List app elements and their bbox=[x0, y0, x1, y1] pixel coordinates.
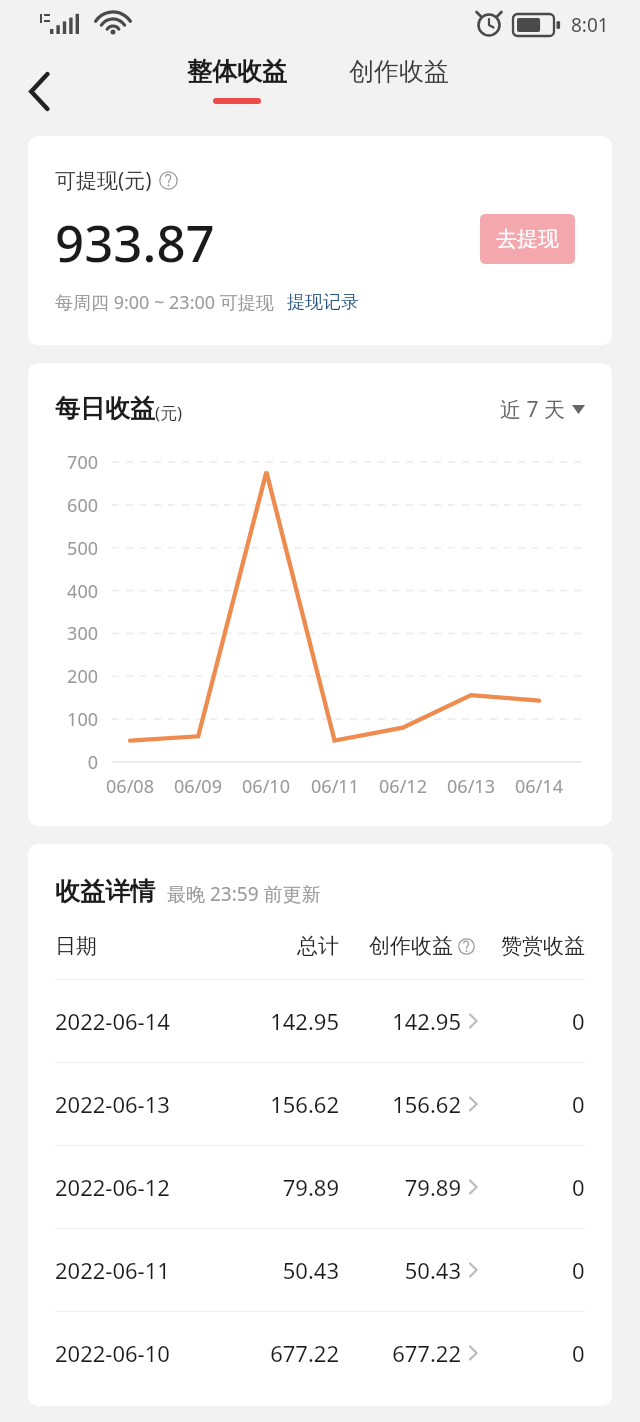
staticText: (元) bbox=[155, 401, 183, 424]
staticText: 2022-06-12 bbox=[55, 1172, 243, 1202]
staticText: 677.22 bbox=[243, 1338, 339, 1368]
staticText: 142.95 bbox=[243, 1006, 339, 1036]
staticText: 去提现 bbox=[496, 226, 559, 252]
staticText: 06/08 bbox=[96, 774, 164, 799]
staticText: 50.43 bbox=[243, 1255, 339, 1285]
staticText: 提现记录 bbox=[287, 291, 359, 314]
button[interactable]: 2022-06-14 bbox=[28, 980, 612, 1062]
staticText: 可提现(元) bbox=[55, 166, 152, 195]
button[interactable]: 2022-06-10 bbox=[28, 1312, 612, 1394]
staticText: 收益详情 bbox=[55, 876, 155, 907]
staticText: 赞赏收益 bbox=[501, 933, 585, 959]
staticText: 300 bbox=[34, 621, 98, 646]
staticText: 200 bbox=[34, 664, 98, 689]
staticText: 0 bbox=[34, 750, 98, 775]
button[interactable]: Back bbox=[13, 64, 67, 118]
staticText: 100 bbox=[34, 707, 98, 732]
staticText: 156.62 bbox=[243, 1089, 339, 1119]
staticText: 600 bbox=[34, 493, 98, 518]
staticText: 8:01 bbox=[571, 12, 609, 38]
staticText: 2022-06-10 bbox=[55, 1338, 243, 1368]
staticText: 0 bbox=[572, 1006, 585, 1036]
staticText: 06/09 bbox=[164, 774, 232, 799]
staticText: 0 bbox=[572, 1338, 585, 1368]
button[interactable]: 2022-06-13 bbox=[28, 1063, 612, 1145]
staticText: 500 bbox=[34, 536, 98, 561]
staticText: 79.89 bbox=[243, 1172, 339, 1202]
staticText: 每日收益 bbox=[55, 393, 155, 424]
staticText: 677.22 bbox=[369, 1338, 461, 1368]
staticText: 日期 bbox=[55, 933, 243, 959]
staticText: 2022-06-14 bbox=[55, 1006, 243, 1036]
button[interactable]: 去提现 bbox=[480, 214, 575, 264]
button[interactable]: 近 7 天 bbox=[500, 395, 585, 424]
staticText: 700 bbox=[34, 450, 98, 475]
staticText: 2022-06-13 bbox=[55, 1089, 243, 1119]
button[interactable]: 提现记录 bbox=[287, 291, 359, 314]
staticText: 总计 bbox=[243, 933, 339, 959]
button[interactable]: 说明 bbox=[159, 171, 178, 190]
staticText: 933.87 bbox=[55, 207, 215, 276]
staticText: 06/11 bbox=[301, 774, 369, 799]
button[interactable]: 整体收益 bbox=[169, 56, 305, 104]
staticText: 2022-06-11 bbox=[55, 1255, 243, 1285]
staticText: 06/12 bbox=[369, 774, 437, 799]
button[interactable]: 2022-06-12 bbox=[28, 1146, 612, 1228]
button[interactable]: 创作收益 bbox=[331, 56, 467, 87]
staticText: 创作收益 bbox=[349, 56, 449, 87]
staticText: 06/13 bbox=[437, 774, 505, 799]
staticText: 创作收益 bbox=[369, 933, 453, 959]
staticText: 0 bbox=[572, 1089, 585, 1119]
button[interactable]: 2022-06-11 bbox=[28, 1229, 612, 1311]
staticText: 400 bbox=[34, 579, 98, 604]
staticText: 50.43 bbox=[369, 1255, 461, 1285]
staticText: 最晚 23:59 前更新 bbox=[167, 881, 321, 907]
staticText: 06/14 bbox=[505, 774, 573, 799]
staticText: 142.95 bbox=[369, 1006, 461, 1036]
staticText: 06/10 bbox=[232, 774, 300, 799]
staticText: 整体收益 bbox=[187, 56, 287, 87]
staticText: 每周四 9:00 ~ 23:00 可提现 bbox=[55, 290, 274, 315]
staticText: 79.89 bbox=[369, 1172, 461, 1202]
staticText: 156.62 bbox=[369, 1089, 461, 1119]
staticText: 近 7 天 bbox=[500, 395, 565, 424]
staticText: 0 bbox=[572, 1255, 585, 1285]
staticText: 0 bbox=[572, 1172, 585, 1202]
